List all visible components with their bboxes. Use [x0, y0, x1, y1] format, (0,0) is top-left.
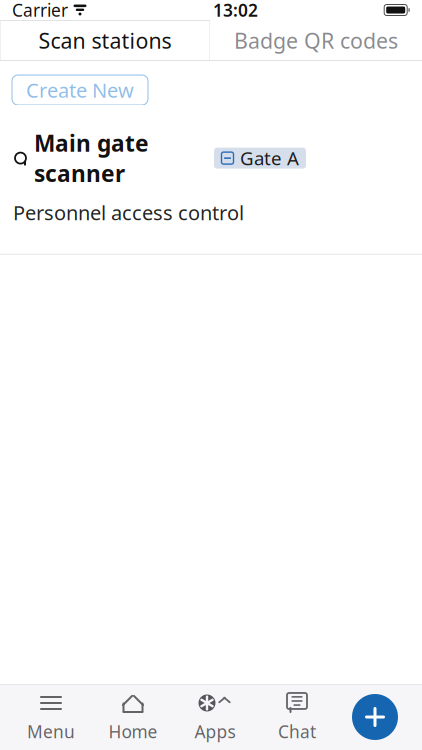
button[interactable]: Create New — [12, 75, 148, 105]
button[interactable]: Chat — [256, 686, 338, 748]
staticText: Personnel access control — [13, 199, 244, 226]
staticText: Apps — [194, 720, 235, 743]
staticText: Home — [108, 720, 157, 743]
staticText: Badge QR codes — [234, 26, 398, 55]
staticText: Main gate scanner — [34, 128, 149, 188]
button[interactable]: Scan stations — [0, 20, 210, 60]
staticText: Menu — [27, 720, 75, 743]
button[interactable]: Apps — [174, 686, 256, 748]
staticText: Create New — [26, 77, 134, 103]
button[interactable]: Badge QR codes — [210, 20, 422, 60]
staticText: 13:02 — [213, 0, 258, 21]
button[interactable]: Create — [338, 686, 412, 748]
staticText: Carrier — [12, 0, 68, 21]
button[interactable]: Main gate scanner — [0, 105, 422, 254]
staticText: Scan stations — [38, 26, 171, 55]
staticText: Chat — [278, 720, 316, 743]
staticText: Gate A — [240, 146, 299, 170]
button[interactable]: Home — [92, 686, 174, 748]
button[interactable]: Menu — [10, 686, 92, 748]
